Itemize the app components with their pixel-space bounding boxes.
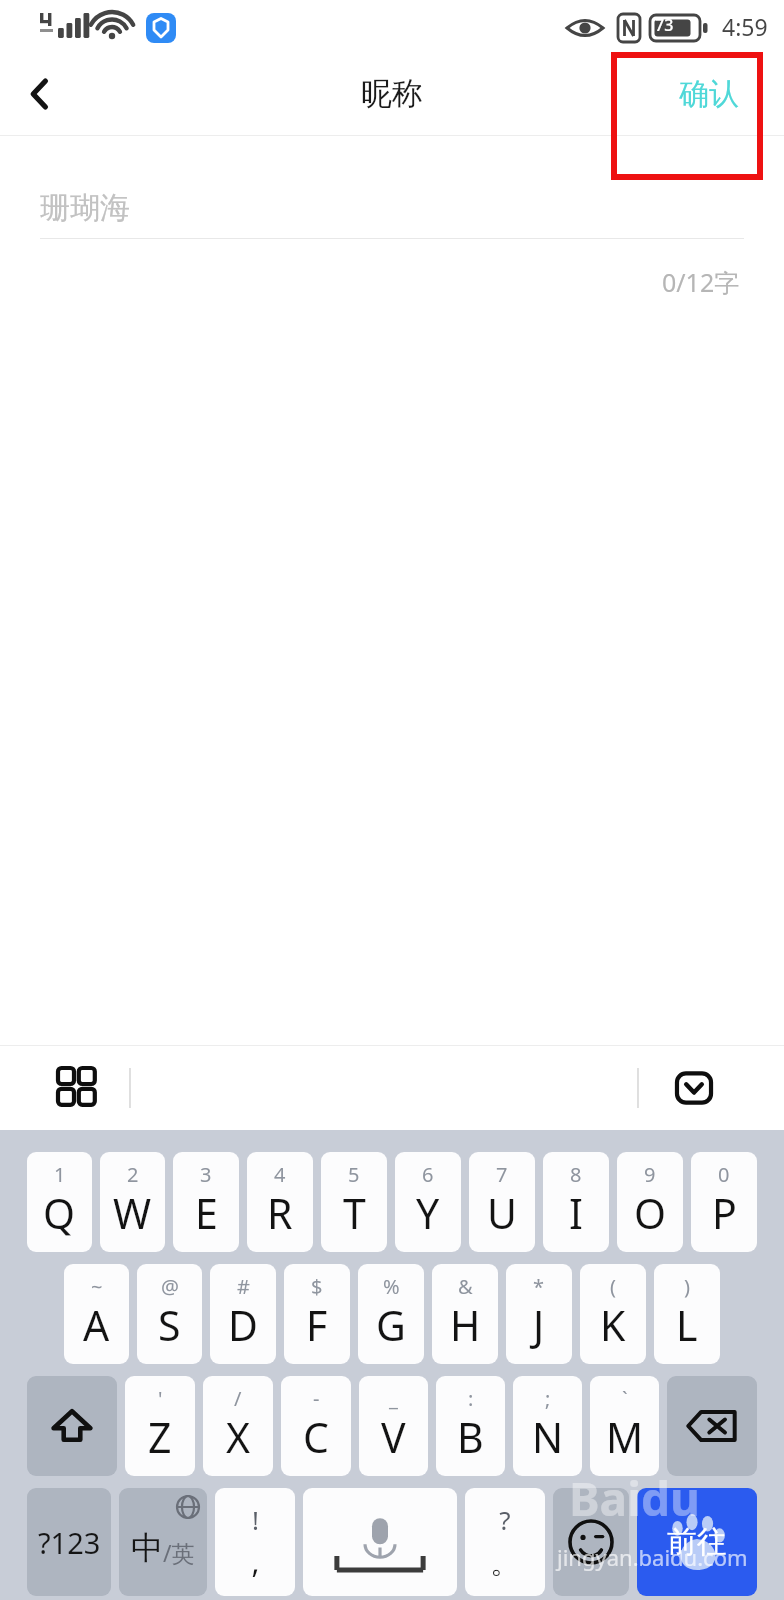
staticText: 。 [490,1544,520,1582]
staticText: R [267,1185,293,1241]
button[interactable]: 5 [321,1152,387,1252]
button[interactable]: # [210,1264,276,1364]
staticText: 1 [54,1161,66,1188]
staticText: jingyan.baidu.com [557,1542,748,1572]
staticText: L [676,1297,698,1353]
button[interactable]: 珊瑚海 [40,178,744,238]
button[interactable]: 中 [119,1488,207,1596]
button[interactable]: ! [215,1488,295,1596]
staticText: U [487,1185,517,1241]
staticText: N [532,1409,564,1465]
staticText: # [237,1273,250,1300]
button[interactable]: Shift [27,1376,117,1476]
staticText: 昵称 [361,74,423,113]
button[interactable]: Space [303,1488,457,1596]
button[interactable]: 2 [100,1152,165,1252]
staticText: B [457,1409,484,1465]
staticText: 珊瑚海 [40,189,130,227]
button[interactable]: ' [125,1376,195,1476]
staticText: 8 [570,1161,582,1188]
staticText: * [533,1273,545,1300]
staticText: ( [610,1273,616,1300]
staticText: ` [622,1385,628,1412]
staticText: Q [43,1185,76,1241]
button[interactable]: 6 [395,1152,461,1252]
staticText: 5 [348,1161,360,1188]
staticText: Z [148,1409,172,1465]
button[interactable]: ?123 [27,1488,111,1596]
button[interactable]: & [432,1264,498,1364]
button[interactable]: ~ [64,1264,129,1364]
staticText: 4:59 [722,11,768,42]
staticText: @ [161,1273,179,1300]
button[interactable]: 4 [247,1152,313,1252]
button[interactable]: Hide keyboard [660,1054,728,1122]
staticText: & [458,1273,473,1300]
staticText: _ [389,1385,398,1412]
staticText: 9 [644,1161,656,1188]
staticText: ' [158,1385,163,1412]
staticText: W [113,1185,152,1241]
staticText: 0 [718,1161,730,1188]
staticText: , [251,1541,260,1582]
button[interactable]: ; [513,1376,582,1476]
staticText: J [533,1297,545,1353]
staticText: 2 [127,1161,139,1188]
staticText: : [468,1385,474,1412]
button[interactable]: _ [359,1376,428,1476]
staticText: H [450,1297,481,1353]
staticText: D [228,1297,258,1353]
staticText: 确认 [679,75,739,113]
staticText: G [376,1297,406,1353]
button[interactable]: 7 [469,1152,535,1252]
staticText: ~ [91,1273,103,1300]
button[interactable]: : [436,1376,505,1476]
staticText: 0/12字 [662,265,740,299]
button[interactable]: 0 [691,1152,757,1252]
staticText: / [234,1385,242,1412]
button[interactable]: Enter [637,1488,757,1596]
staticText: P [712,1185,737,1241]
button[interactable]: ( [580,1264,646,1364]
button[interactable]: / [203,1376,273,1476]
staticText: S [158,1297,181,1353]
staticText: 6 [422,1161,434,1188]
staticText: /英 [163,1537,195,1568]
staticText: T [343,1185,366,1241]
staticText: ?123 [38,1523,101,1562]
button[interactable]: 确认 [634,52,784,135]
button[interactable]: Back [4,58,76,130]
button[interactable]: * [506,1264,572,1364]
staticText: M [606,1409,644,1465]
button[interactable]: ) [654,1264,720,1364]
staticText: 3 [200,1161,212,1188]
button[interactable]: @ [137,1264,202,1364]
staticText: F [306,1297,328,1353]
button[interactable]: ? [465,1488,545,1596]
button[interactable]: - [281,1376,351,1476]
staticText: Baidu [569,1467,700,1530]
staticText: O [634,1185,667,1241]
staticText: 7 [496,1161,508,1188]
staticText: 中 [131,1528,163,1568]
staticText: ? [499,1502,511,1537]
button[interactable]: 8 [543,1152,609,1252]
staticText: ) [684,1273,690,1300]
staticText: K [600,1297,626,1353]
button[interactable]: ` [590,1376,659,1476]
staticText: X [226,1409,251,1465]
button[interactable]: % [358,1264,424,1364]
staticText: 前往 [667,1523,727,1561]
button[interactable]: 1 [27,1152,92,1252]
button[interactable]: 3 [173,1152,239,1252]
staticText: A [83,1297,110,1353]
staticText: I [569,1185,583,1241]
staticText: 73 [655,14,674,36]
button[interactable]: Emoji [553,1488,629,1596]
button[interactable]: Backspace [667,1376,757,1476]
staticText: - [313,1385,320,1412]
staticText: % [383,1273,400,1300]
button[interactable]: $ [284,1264,350,1364]
button[interactable]: 9 [617,1152,683,1252]
button[interactable]: Keyboard layouts [44,1054,112,1122]
